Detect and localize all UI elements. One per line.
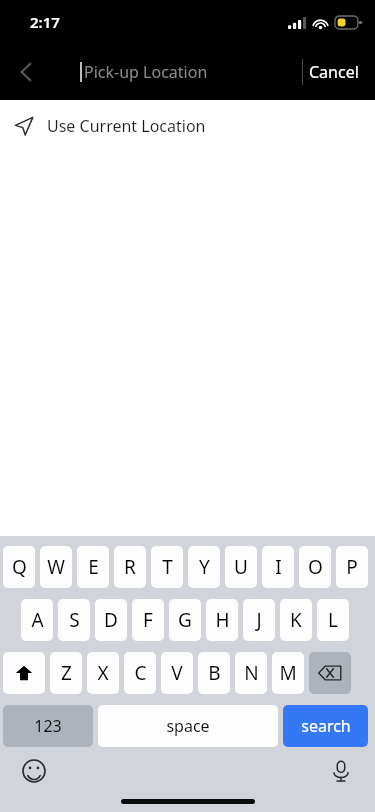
staticText: V xyxy=(171,660,183,686)
button[interactable]: 123 xyxy=(3,705,93,747)
staticText: Pick-up Location xyxy=(84,61,208,83)
staticText: F xyxy=(143,607,153,633)
button[interactable]: A xyxy=(21,599,53,641)
staticText: Use Current Location xyxy=(47,115,206,137)
staticText: Y xyxy=(199,554,210,580)
staticText: C xyxy=(134,660,147,686)
button[interactable]: M xyxy=(272,652,304,694)
button[interactable]: Use Current Location xyxy=(0,100,375,152)
button[interactable]: J xyxy=(243,599,275,641)
button[interactable]: D xyxy=(95,599,127,641)
staticText: M xyxy=(279,660,297,686)
button[interactable]: K xyxy=(280,599,312,641)
staticText: I xyxy=(275,554,282,580)
staticText: Cancel xyxy=(309,61,359,83)
button[interactable]: H xyxy=(206,599,238,641)
button[interactable]: Q xyxy=(3,546,35,588)
button[interactable]: X xyxy=(87,652,119,694)
button[interactable]: S xyxy=(58,599,90,641)
staticText: T xyxy=(162,554,173,580)
button[interactable]: space xyxy=(98,705,278,747)
staticText: space xyxy=(166,715,210,737)
staticText: B xyxy=(208,660,221,686)
button[interactable]: C xyxy=(124,652,156,694)
button[interactable]: O xyxy=(299,546,331,588)
staticText: E xyxy=(88,554,99,580)
button[interactable]: F xyxy=(132,599,164,641)
staticText: G xyxy=(178,607,192,633)
button[interactable]: G xyxy=(169,599,201,641)
button[interactable]: Back xyxy=(0,44,52,100)
staticText: O xyxy=(308,554,323,580)
button[interactable]: W xyxy=(40,546,72,588)
button[interactable]: B xyxy=(198,652,230,694)
staticText: L xyxy=(328,607,338,633)
staticText: K xyxy=(290,607,302,633)
staticText: S xyxy=(69,607,80,633)
staticText: Q xyxy=(12,554,27,580)
staticText: H xyxy=(215,607,230,633)
button[interactable]: P xyxy=(336,546,368,588)
staticText: 2:17 xyxy=(30,12,60,32)
staticText: X xyxy=(97,660,109,686)
staticText: 123 xyxy=(34,715,62,737)
button[interactable]: search xyxy=(283,705,368,747)
button[interactable]: Z xyxy=(50,652,82,694)
button[interactable]: Backspace xyxy=(309,652,351,694)
staticText: W xyxy=(47,554,65,580)
staticText: U xyxy=(234,554,248,580)
button[interactable]: Emoji xyxy=(16,753,52,789)
button[interactable]: N xyxy=(235,652,267,694)
staticText: R xyxy=(124,554,136,580)
button[interactable]: U xyxy=(225,546,257,588)
staticText: J xyxy=(256,607,262,633)
staticText: P xyxy=(346,554,358,580)
button[interactable]: R xyxy=(114,546,146,588)
staticText: Z xyxy=(61,660,72,686)
staticText: search xyxy=(301,715,351,737)
staticText: N xyxy=(244,660,259,686)
button[interactable]: Voice input xyxy=(323,753,359,789)
button[interactable]: E xyxy=(77,546,109,588)
button[interactable]: V xyxy=(161,652,193,694)
button[interactable]: L xyxy=(317,599,349,641)
staticText: D xyxy=(104,607,118,633)
button[interactable]: Cancel xyxy=(293,44,375,100)
button[interactable]: Y xyxy=(188,546,220,588)
button[interactable]: T xyxy=(151,546,183,588)
staticText: A xyxy=(31,607,44,633)
button[interactable]: I xyxy=(262,546,294,588)
button[interactable]: Shift xyxy=(3,652,45,694)
